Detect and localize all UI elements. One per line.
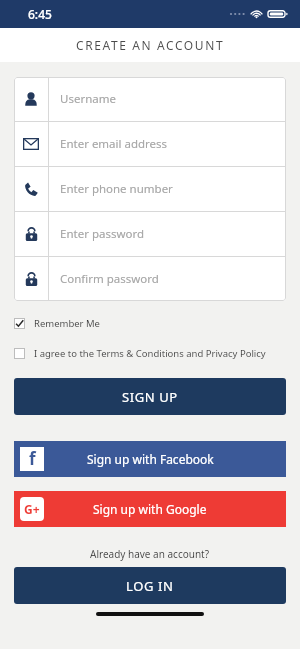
staticText: Enter password	[60, 226, 145, 242]
staticText: Confirm password	[60, 271, 159, 287]
staticText: Username	[60, 91, 116, 107]
button[interactable]: Confirm password	[14, 257, 286, 301]
staticText: Already have an account?	[90, 547, 210, 561]
button[interactable]: Sign up with Google	[14, 491, 286, 527]
button[interactable]: Enter phone number	[14, 167, 286, 211]
staticText: Enter email address	[60, 136, 168, 152]
button[interactable]: SIGN UP	[14, 378, 286, 415]
button[interactable]: Enter email address	[14, 122, 286, 166]
button[interactable]: I agree to the Terms & Conditions and Pr…	[14, 347, 286, 360]
button[interactable]: LOG IN	[14, 567, 286, 604]
staticText: SIGN UP	[122, 388, 178, 406]
button[interactable]: Username	[14, 77, 286, 121]
button[interactable]: Sign up with Facebook	[14, 441, 286, 477]
staticText: Sign up with Google	[93, 501, 207, 517]
staticText: f	[29, 447, 36, 470]
staticText: LOG IN	[126, 577, 174, 595]
staticText: G+	[24, 501, 40, 517]
staticText: I agree to the Terms & Conditions and Pr…	[34, 347, 266, 360]
staticText: 6:45	[28, 6, 52, 22]
button[interactable]: Remember Me	[14, 317, 286, 330]
staticText: Remember Me	[34, 317, 100, 330]
staticText: CREATE AN ACCOUNT	[76, 37, 225, 53]
staticText: Sign up with Facebook	[87, 451, 214, 467]
button[interactable]: Enter password	[14, 212, 286, 256]
staticText: Enter phone number	[60, 181, 173, 197]
